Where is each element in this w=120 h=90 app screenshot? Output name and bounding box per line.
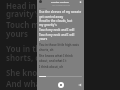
- button[interactable]: Play: [58, 82, 64, 88]
- button[interactable]: Touch my neck and I will: [39, 28, 82, 32]
- button[interactable]: I think about, oh: [39, 65, 82, 69]
- button[interactable]: Head in the clouds, but: [39, 19, 82, 23]
- staticText: You in those little: [6, 44, 76, 55]
- button[interactable]: Profile: [39, 0, 42, 3]
- button[interactable]: Touch my neck and I will: [39, 33, 82, 37]
- staticText: LYRICS: [39, 7, 47, 10]
- button[interactable]: Use the sleeves of my sweate: [39, 10, 82, 14]
- button[interactable]: my gravity's: [39, 23, 82, 27]
- button[interactable]: Add to playlist: [79, 1, 82, 4]
- button[interactable]: yours: [39, 37, 82, 41]
- staticText: Head in the clouds: [6, 1, 79, 12]
- button[interactable]: She knows what I think: [39, 54, 82, 58]
- staticText: Sweater Weather: [51, 1, 70, 4]
- staticText: yours: [6, 29, 29, 40]
- button[interactable]: get carried away: [39, 15, 82, 19]
- staticText: Touch my neck and: [6, 20, 82, 31]
- button[interactable]: about, and what I t: [39, 59, 82, 63]
- staticText: The Neighbourhood: [52, 4, 70, 7]
- staticText: shorts, oh my: [6, 53, 60, 64]
- staticText: gravity's centered: [6, 9, 78, 20]
- staticText: She knows what I: [6, 68, 75, 79]
- button[interactable]: shorts, oh: [39, 48, 82, 52]
- staticText: And what I think: [6, 79, 72, 90]
- button[interactable]: Volume: [78, 83, 82, 87]
- button[interactable]: You in those little high-wais: [39, 43, 82, 47]
